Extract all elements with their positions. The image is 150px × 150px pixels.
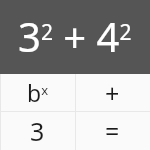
button[interactable]: bx [0, 74, 75, 111]
staticText: bx [27, 77, 49, 108]
button[interactable]: 3 [0, 112, 75, 150]
button[interactable]: + [75, 74, 150, 111]
staticText: + [105, 76, 120, 110]
staticText: 32 + 42 [18, 9, 132, 63]
button[interactable]: 32 + 42 [0, 0, 150, 74]
button[interactable]: = [75, 112, 150, 150]
staticText: 3 [30, 114, 45, 148]
staticText: = [105, 114, 120, 148]
